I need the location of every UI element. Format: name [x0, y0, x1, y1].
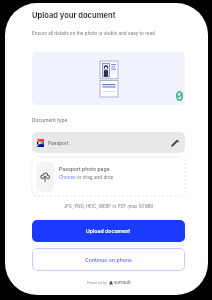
button[interactable]: Continue on phone: [32, 248, 185, 271]
button[interactable]: Upload document: [32, 220, 185, 242]
staticText: Upload your document: [32, 11, 116, 20]
staticText: sumsub: [114, 280, 131, 285]
staticText: Powered by: [87, 281, 108, 285]
staticText: Passport: [48, 140, 69, 146]
staticText: Upload document: [86, 228, 131, 234]
staticText: JPG, PNG, HEIC, WEBP or PDF (max 50 MB): [32, 204, 185, 209]
button[interactable]: Passport photo page: [32, 157, 185, 196]
staticText: Ensure all details on the photo is visib…: [32, 31, 155, 37]
button[interactable]: Passport: [32, 132, 185, 153]
staticText: Passport photo page: [59, 166, 110, 172]
staticText: Choose or drag and drop: [59, 175, 114, 181]
staticText: Document type: [32, 117, 68, 123]
button[interactable]: Edit document type: [170, 138, 180, 148]
staticText: Continue on phone: [85, 257, 133, 263]
